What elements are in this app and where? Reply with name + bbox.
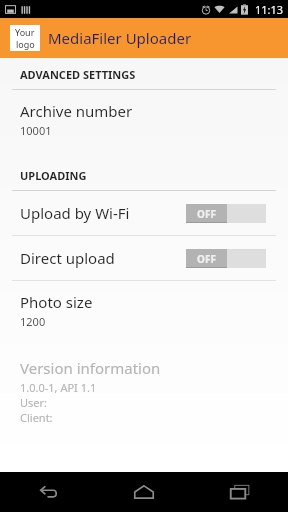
staticText: Your: [15, 26, 35, 38]
button[interactable]: Home: [96, 472, 192, 512]
staticText: Photo size: [20, 292, 93, 312]
button[interactable]: Toggle off: [186, 249, 266, 268]
button[interactable]: Back: [0, 472, 96, 512]
staticText: OFF: [197, 207, 216, 221]
button[interactable]: Recent apps: [192, 472, 288, 512]
staticText: Archive number: [20, 101, 133, 121]
staticText: MediaFiler Uploader: [48, 28, 192, 48]
staticText: UPLOADING: [20, 168, 87, 183]
staticText: 11:13: [255, 2, 284, 17]
button[interactable]: Direct upload: [0, 236, 288, 280]
staticText: Upload by Wi-Fi: [20, 203, 186, 223]
button[interactable]: Version information: [0, 348, 288, 435]
staticText: User:: [20, 395, 48, 410]
staticText: Client:: [20, 410, 53, 425]
button[interactable]: Photo size: [0, 281, 288, 340]
button[interactable]: Archive number: [0, 90, 288, 149]
button[interactable]: Upload by Wi-Fi: [0, 191, 288, 235]
staticText: 1200: [20, 314, 46, 329]
staticText: logo: [16, 38, 35, 50]
staticText: OFF: [197, 252, 216, 266]
staticText: ADVANCED SETTINGS: [20, 67, 136, 82]
button[interactable]: Toggle off: [186, 204, 266, 223]
staticText: Version information: [20, 358, 161, 378]
staticText: Direct upload: [20, 248, 186, 268]
staticText: 10001: [20, 123, 52, 138]
staticText: 1.0.0-1, API 1.1: [20, 380, 97, 395]
